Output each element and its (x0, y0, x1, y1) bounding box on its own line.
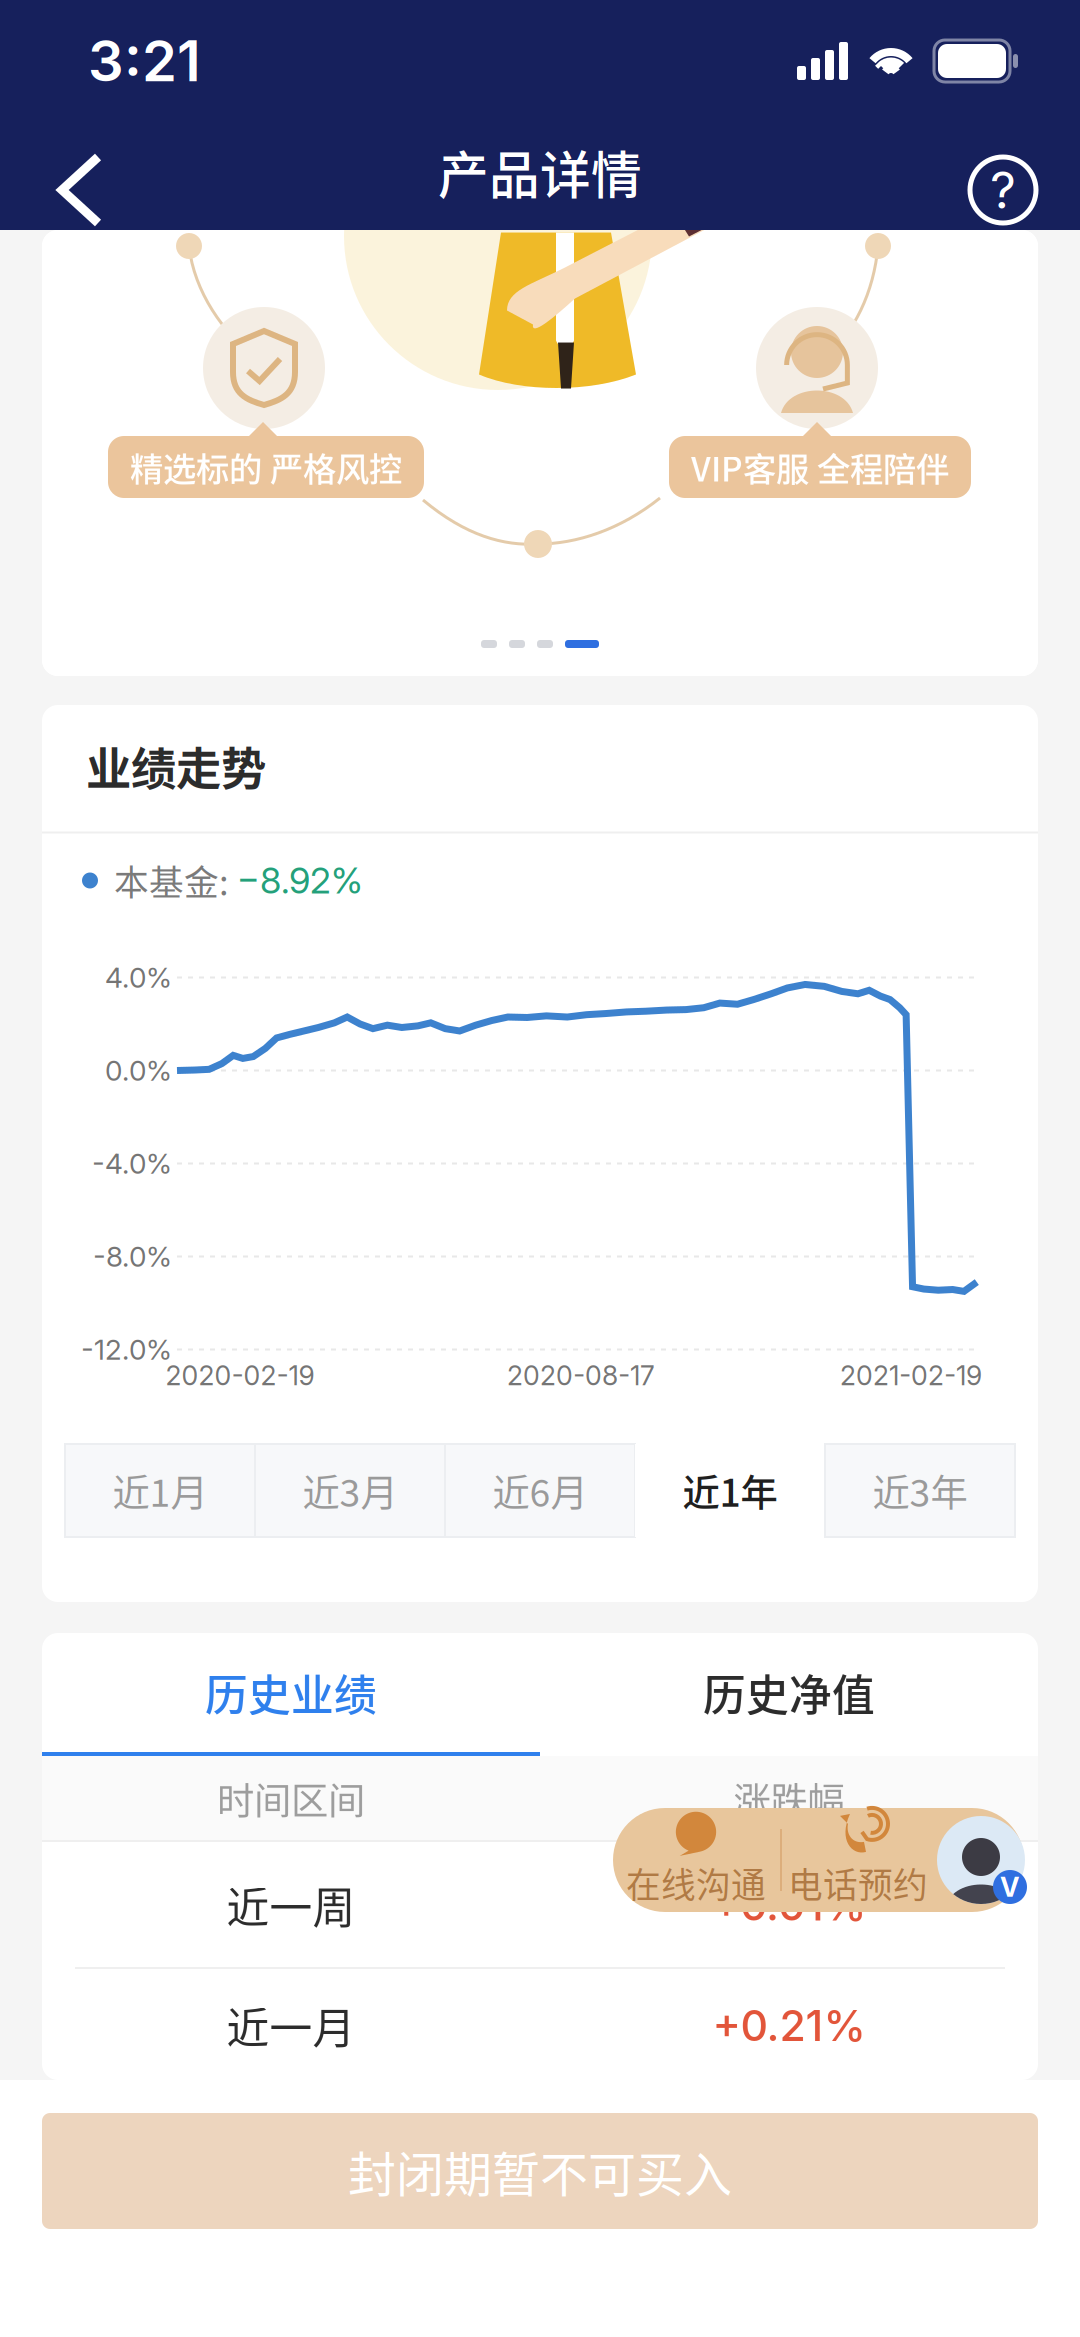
staticText: 2020-08-17 (507, 1359, 655, 1392)
staticText: 近6月 (492, 1463, 587, 1518)
button[interactable]: 历史净值 (540, 1633, 1038, 1752)
button[interactable]: Back (22, 131, 136, 249)
staticText: 历史业绩 (205, 1662, 377, 1723)
staticText: 历史净值 (703, 1662, 875, 1723)
staticText: -8.0% (93, 1240, 172, 1273)
staticText: 在线沟通 (626, 1858, 766, 1908)
staticText: -12.0% (81, 1333, 172, 1366)
button[interactable]: 近3月 (255, 1444, 445, 1537)
staticText: +0.01% (712, 1879, 866, 1931)
button[interactable]: 封闭期暂不可买入 (42, 2113, 1038, 2229)
button[interactable]: 电话预约 (782, 1808, 934, 1912)
staticText: 封闭期暂不可买入 (348, 2136, 732, 2206)
button[interactable]: 近1年 (635, 1444, 825, 1537)
staticText: 2021-02-19 (840, 1359, 982, 1392)
button[interactable]: Help (942, 131, 1064, 249)
staticText: 近1年 (682, 1463, 777, 1518)
staticText: -4.0% (92, 1147, 172, 1180)
staticText: −8.92% (237, 859, 363, 902)
button[interactable]: 历史业绩 (42, 1633, 540, 1752)
staticText: 近3年 (872, 1463, 967, 1518)
button[interactable]: 在线沟通 (612, 1808, 780, 1912)
staticText: 4.0% (105, 961, 172, 994)
staticText: 涨跌幅 (733, 1771, 844, 1826)
staticText: 精选标的 严格风控 (130, 443, 402, 491)
staticText: 近一周 (226, 1874, 355, 1936)
staticText: 电话预约 (788, 1858, 928, 1908)
staticText: 2020-02-19 (165, 1359, 314, 1392)
staticText: +0.21% (712, 2000, 865, 2051)
staticText: 本基金: (98, 855, 237, 906)
staticText: 时间区间 (217, 1771, 365, 1826)
staticText: 近一月 (226, 1995, 355, 2056)
button[interactable]: 近1月 (65, 1444, 255, 1537)
staticText: 近1月 (112, 1463, 207, 1518)
button[interactable]: 近3年 (825, 1444, 1015, 1537)
staticText: 近3月 (302, 1463, 397, 1518)
staticText: V (1000, 1871, 1020, 1903)
button[interactable]: 近6月 (445, 1444, 635, 1537)
staticText: ? (990, 159, 1016, 221)
staticText: 业绩走势 (86, 733, 266, 799)
button[interactable]: Consultant (937, 1816, 1025, 1904)
staticText: 产品详情 (438, 135, 642, 209)
staticText: VIP客服 全程陪伴 (691, 443, 949, 491)
staticText: 0.0% (105, 1054, 172, 1087)
staticText: 3:21 (88, 27, 201, 95)
